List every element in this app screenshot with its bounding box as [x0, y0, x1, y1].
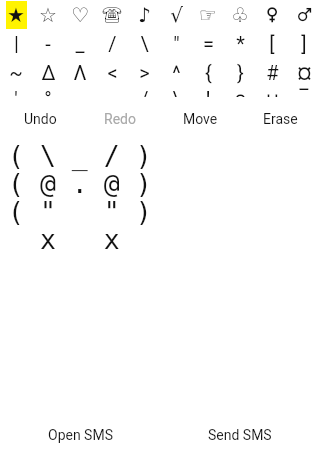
button[interactable]: Insert symbol / — [128, 87, 160, 97]
staticText: < — [107, 61, 118, 84]
button[interactable]: Insert symbol ] — [288, 29, 320, 58]
staticText: \ — [172, 87, 181, 97]
staticText: ∪ — [265, 87, 280, 97]
staticText: Λ — [73, 61, 87, 84]
button[interactable]: Insert symbol ∩ — [224, 87, 256, 97]
button[interactable]: Insert symbol Λ — [64, 58, 96, 87]
button[interactable]: Insert symbol - — [32, 29, 64, 58]
button[interactable]: Insert symbol ^ — [160, 58, 192, 87]
staticText: √ — [170, 3, 183, 26]
staticText: ♧ — [231, 3, 249, 26]
button[interactable]: Insert symbol | — [0, 29, 32, 58]
button[interactable]: Insert symbol √ — [160, 0, 192, 29]
staticText: ☆ — [39, 3, 57, 26]
button[interactable]: Insert symbol \ — [160, 87, 192, 97]
staticText: Move — [183, 111, 218, 127]
button[interactable]: Send SMS — [160, 415, 320, 455]
staticText: { — [205, 61, 212, 84]
button[interactable]: Insert symbol ‾ — [288, 87, 320, 97]
staticText: - — [45, 32, 51, 55]
staticText: } — [237, 61, 244, 84]
button[interactable]: Insert symbol ~ — [0, 58, 32, 87]
button[interactable]: Move — [160, 97, 240, 141]
button[interactable]: Insert symbol ¤ — [288, 58, 320, 87]
staticText: ★ — [7, 3, 25, 26]
staticText: ♪ — [138, 3, 151, 26]
button[interactable]: Insert symbol ♧ — [224, 0, 256, 29]
staticText: ' — [14, 87, 18, 97]
button[interactable]: Insert symbol Δ — [32, 58, 64, 87]
button[interactable]: Insert symbol ! — [192, 87, 224, 97]
staticText: | — [14, 32, 19, 55]
staticText: # — [266, 61, 279, 84]
staticText: " — [173, 32, 180, 55]
button[interactable]: ( \ _ / ) ( @ . @ ) ( " " ) x x — [8, 140, 152, 255]
button[interactable]: Insert symbol ∪ — [256, 87, 288, 97]
button[interactable]: Insert symbol ♡ — [64, 0, 96, 29]
staticText: ! — [205, 87, 211, 97]
staticText: * — [236, 32, 245, 55]
button[interactable]: Insert symbol ♪ — [128, 0, 160, 29]
staticText: [ — [269, 32, 275, 55]
staticText: ☞ — [199, 3, 217, 26]
staticText: ° — [44, 87, 52, 97]
staticText: = — [203, 32, 214, 55]
staticText: ‾ — [299, 87, 309, 97]
button[interactable]: Erase — [240, 97, 320, 141]
button[interactable]: Insert symbol } — [224, 58, 256, 87]
staticText: \ — [140, 32, 149, 55]
staticText: ^ — [172, 61, 181, 84]
button[interactable]: Insert symbol ☎ — [96, 0, 128, 29]
button[interactable]: Insert symbol = — [192, 29, 224, 58]
button[interactable]: Insert symbol { — [192, 58, 224, 87]
staticText: Δ — [41, 61, 56, 84]
button[interactable]: Open SMS — [0, 415, 160, 455]
staticText: > — [139, 61, 150, 84]
button[interactable]: Undo — [0, 97, 80, 141]
button[interactable]: Insert symbol ♀ — [256, 0, 288, 29]
staticText: Erase — [263, 111, 298, 127]
button[interactable]: Insert symbol ☞ — [192, 0, 224, 29]
staticText: ~ — [9, 61, 23, 84]
button[interactable]: Insert symbol ★ — [0, 0, 32, 29]
button[interactable]: Insert symbol ' — [0, 87, 32, 97]
staticText: ∩ — [233, 87, 248, 97]
button[interactable]: Insert symbol " — [160, 29, 192, 58]
staticText: ♡ — [71, 3, 89, 26]
staticText: ¤ — [297, 61, 312, 84]
staticText: / — [140, 87, 149, 97]
staticText: ♂ — [296, 7, 313, 22]
button[interactable]: Insert symbol > — [128, 58, 160, 87]
button[interactable]: Insert symbol [ — [256, 29, 288, 58]
staticText: ] — [301, 32, 307, 55]
button[interactable]: Insert symbol * — [224, 29, 256, 58]
button[interactable]: Insert symbol \ — [128, 29, 160, 58]
staticText: _ — [75, 32, 85, 55]
staticText: / — [108, 32, 117, 55]
staticText: ☎ — [102, 6, 122, 24]
staticText: Open SMS — [48, 427, 113, 443]
staticText: Redo — [104, 111, 136, 127]
button[interactable]: Redo — [80, 97, 160, 141]
staticText: Undo — [24, 111, 57, 127]
button[interactable]: Insert symbol ♂ — [288, 0, 320, 29]
button[interactable]: Insert symbol ☆ — [32, 0, 64, 29]
button[interactable]: Insert symbol / — [96, 29, 128, 58]
button[interactable]: Insert symbol _ — [64, 29, 96, 58]
button[interactable]: Insert symbol ° — [32, 87, 64, 97]
staticText: Send SMS — [208, 427, 272, 443]
staticText: ♀ — [262, 6, 282, 24]
button[interactable]: Insert symbol # — [256, 58, 288, 87]
button[interactable]: Insert symbol < — [96, 58, 128, 87]
